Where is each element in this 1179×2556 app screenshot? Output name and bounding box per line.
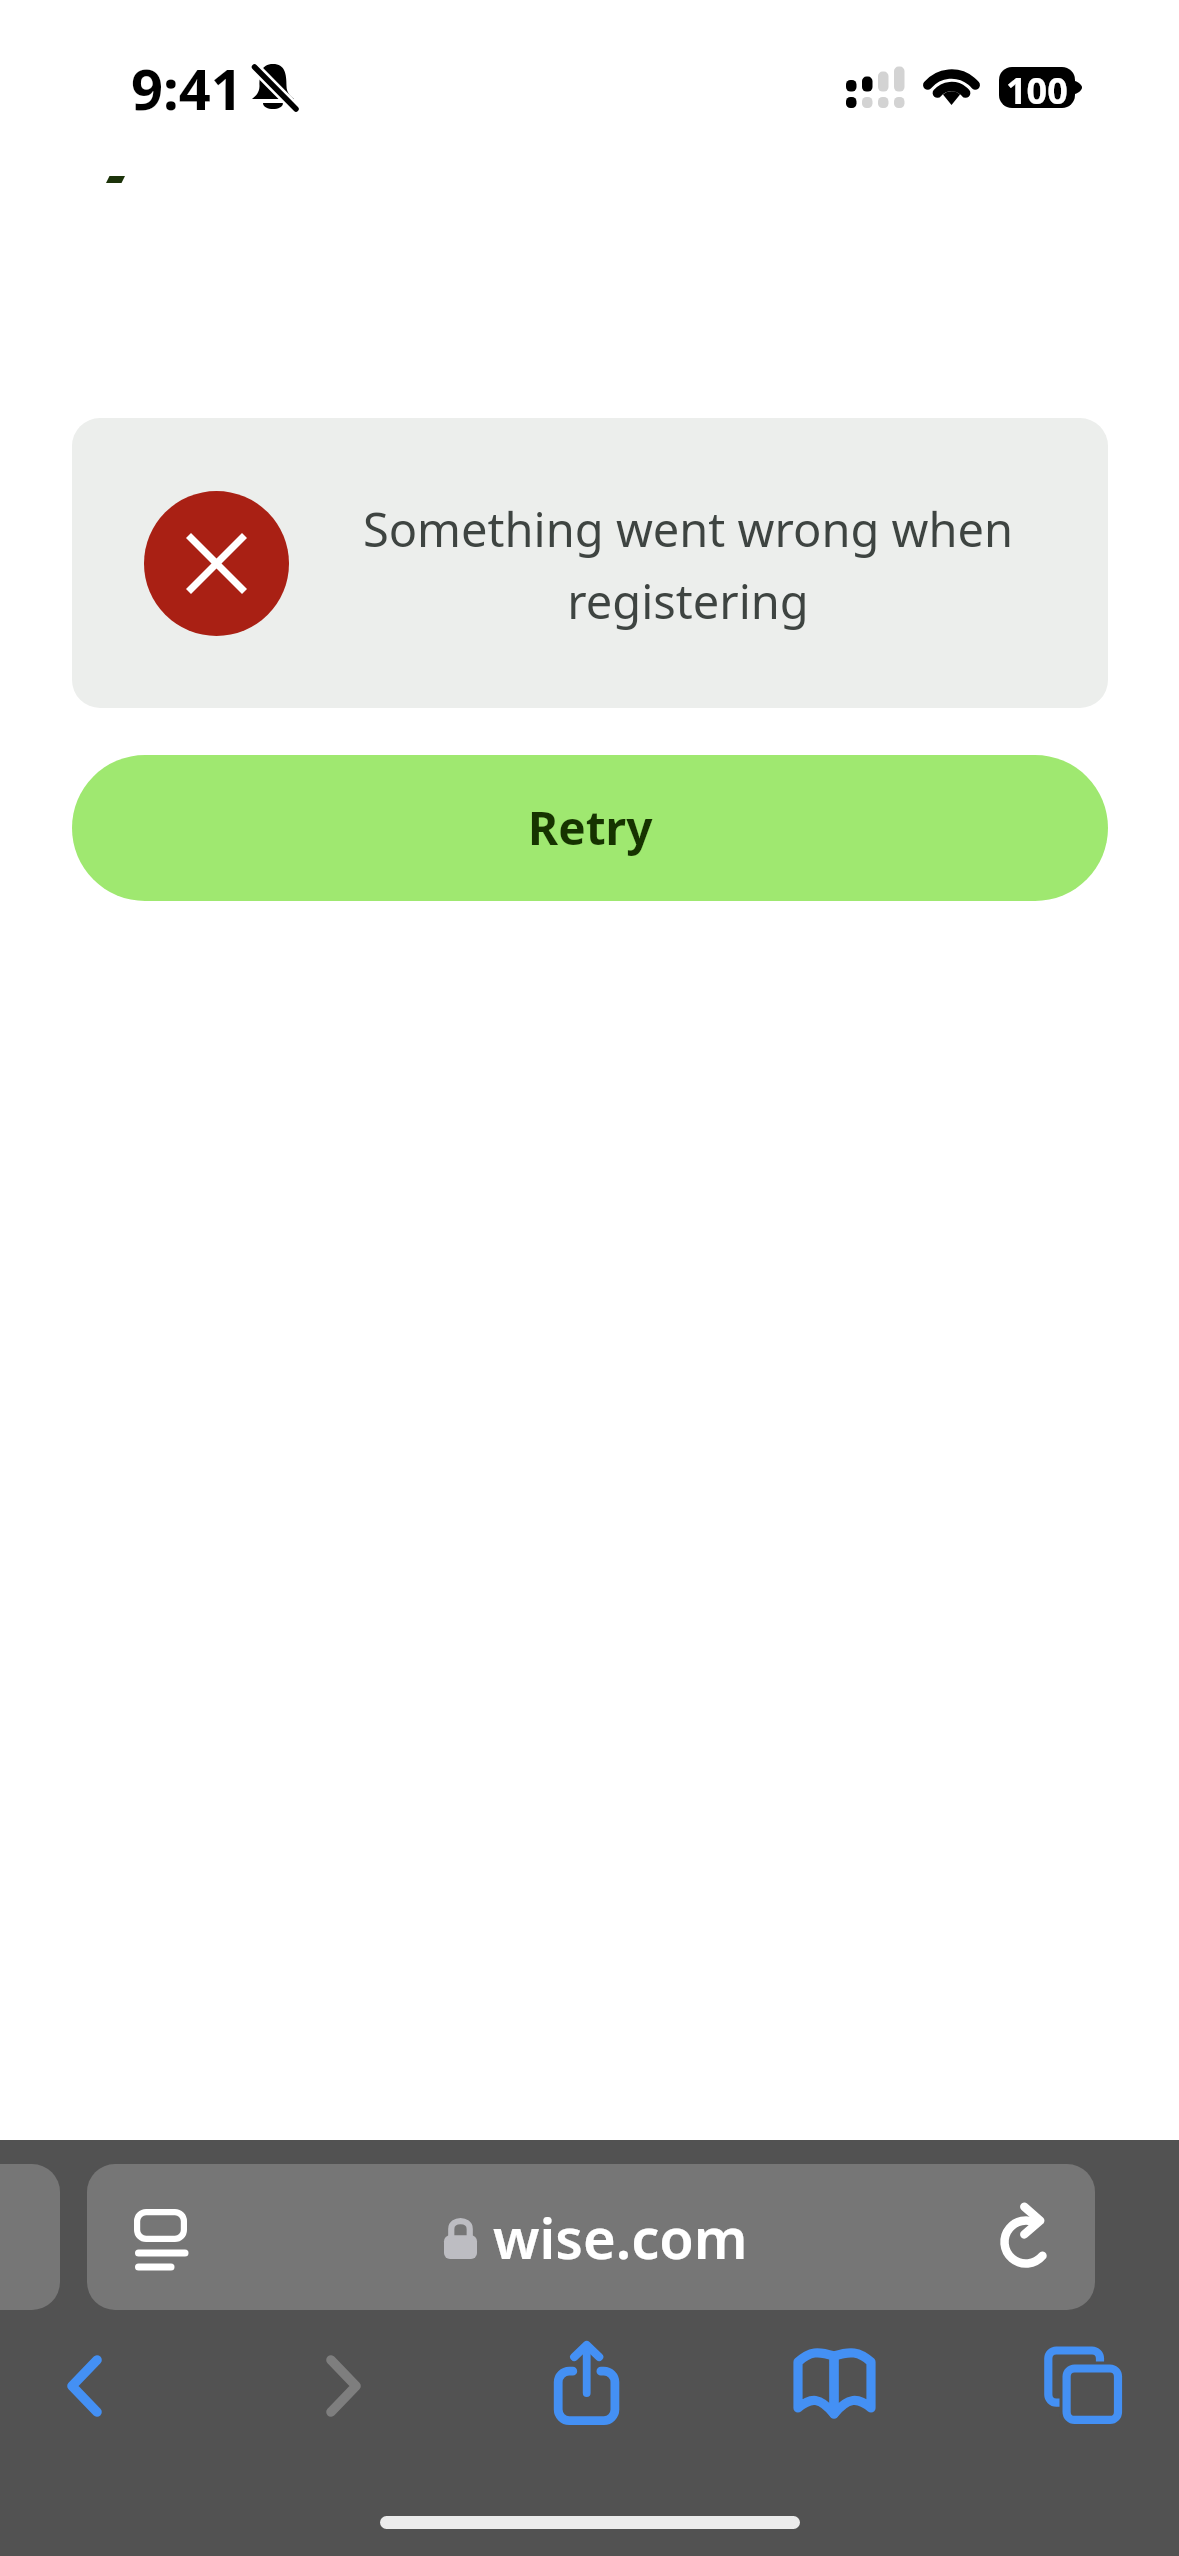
button[interactable]: wise.com <box>87 2164 1095 2310</box>
button[interactable]: Bookmarks <box>790 2345 880 2427</box>
button[interactable]: Tabs <box>1039 2342 1129 2432</box>
staticText: 9:41 <box>131 50 243 126</box>
staticText: wise.com <box>493 2199 748 2275</box>
button[interactable]: Page settings <box>130 2202 192 2274</box>
button[interactable]: Share <box>549 2338 625 2430</box>
staticText: Retry <box>528 796 653 859</box>
button[interactable]: Reload page <box>971 2192 1063 2284</box>
button[interactable]: Back <box>56 2345 118 2425</box>
staticText: 100 <box>1006 67 1068 107</box>
staticText: Something went wrong when registering <box>303 497 1073 632</box>
button[interactable]: Forward <box>315 2345 377 2425</box>
button[interactable]: Retry <box>72 755 1108 901</box>
